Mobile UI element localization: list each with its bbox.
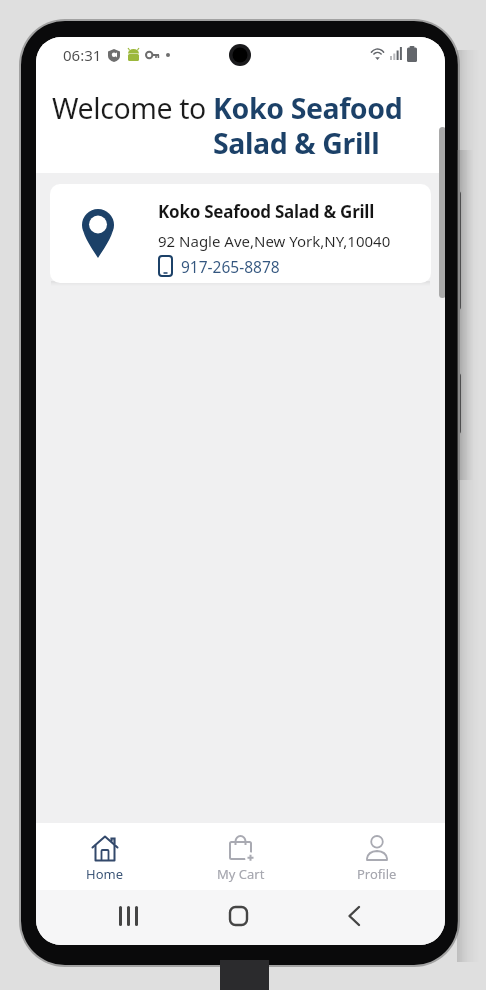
button[interactable]: Home xyxy=(36,823,173,890)
staticText: 92 Nagle Ave,New York,NY,10040 xyxy=(158,231,391,251)
button[interactable]: Koko Seafood Salad & Grill xyxy=(50,184,431,283)
staticText: Home xyxy=(86,865,123,883)
button[interactable]: My Cart xyxy=(173,823,309,890)
button[interactable]: Profile xyxy=(309,823,445,890)
staticText: Welcome to xyxy=(52,89,213,128)
staticText: My Cart xyxy=(217,865,265,883)
button[interactable] xyxy=(229,906,248,926)
staticText: Profile xyxy=(357,865,397,883)
staticText: Koko Seafood Salad & Grill xyxy=(213,89,423,163)
button[interactable] xyxy=(119,906,138,926)
button[interactable] xyxy=(348,906,360,926)
staticText: Koko Seafood Salad & Grill xyxy=(158,200,374,223)
staticText: 06:31 xyxy=(63,45,102,65)
staticText: 917-265-8878 xyxy=(181,256,280,277)
